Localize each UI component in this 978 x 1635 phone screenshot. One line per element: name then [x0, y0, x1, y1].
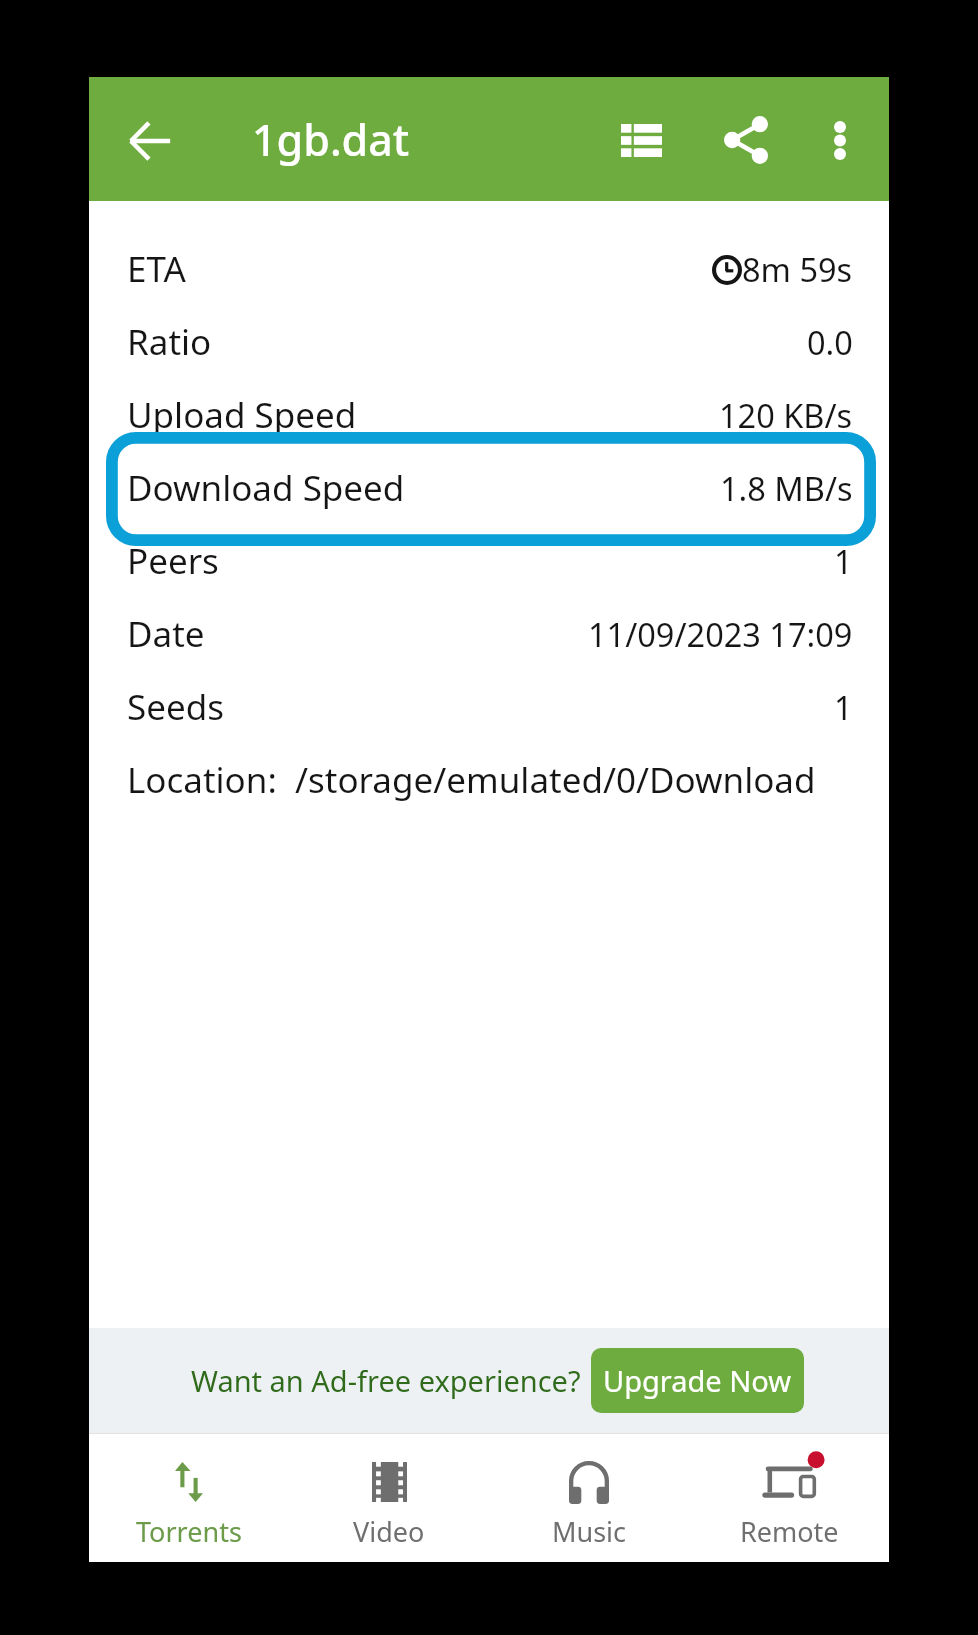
staticText: Music: [552, 1513, 627, 1550]
staticText: Upgrade Now: [603, 1361, 792, 1400]
staticText: Remote: [740, 1513, 839, 1550]
button[interactable]: Seeds: [89, 670, 889, 743]
staticText: 1.8 MB/s: [720, 466, 853, 510]
staticText: 1: [834, 539, 853, 583]
staticText: 120 KB/s: [719, 393, 853, 437]
staticText: 11/09/2023 17:09: [588, 612, 853, 656]
button[interactable]: Video: [289, 1433, 489, 1562]
staticText: Peers: [127, 537, 219, 585]
staticText: 0.0: [807, 320, 853, 364]
button[interactable]: Torrents: [89, 1433, 289, 1562]
button[interactable]: Music: [489, 1433, 689, 1562]
staticText: Ratio: [127, 318, 212, 366]
staticText: 1gb.dat: [252, 110, 410, 169]
button[interactable]: Upgrade Now: [591, 1348, 804, 1413]
staticText: Video: [353, 1513, 425, 1550]
staticText: Date: [127, 610, 205, 658]
button[interactable]: Location: /storage/emulated/0/Download: [89, 743, 889, 816]
staticText: 8m 59s: [742, 247, 853, 291]
staticText: Seeds: [127, 683, 224, 731]
button[interactable]: Download Speed: [89, 451, 889, 524]
staticText: ETA: [127, 245, 186, 293]
button[interactable]: Share: [704, 98, 788, 182]
button[interactable]: ETA: [89, 232, 889, 305]
staticText: Location: /storage/emulated/0/Download: [127, 756, 816, 804]
staticText: Want an Ad-free experience?: [191, 1361, 581, 1400]
button[interactable]: Peers: [89, 524, 889, 597]
button[interactable]: Remote: [689, 1433, 889, 1562]
button[interactable]: Date: [89, 597, 889, 670]
button[interactable]: More options: [798, 98, 882, 182]
staticText: 1: [834, 685, 853, 729]
staticText: Upload Speed: [127, 391, 357, 439]
button[interactable]: Ratio: [89, 305, 889, 378]
staticText: Torrents: [136, 1513, 242, 1550]
staticText: Download Speed: [127, 464, 405, 512]
button[interactable]: Back: [108, 99, 192, 183]
button[interactable]: View list: [599, 98, 683, 182]
button[interactable]: Upload Speed: [89, 378, 889, 451]
